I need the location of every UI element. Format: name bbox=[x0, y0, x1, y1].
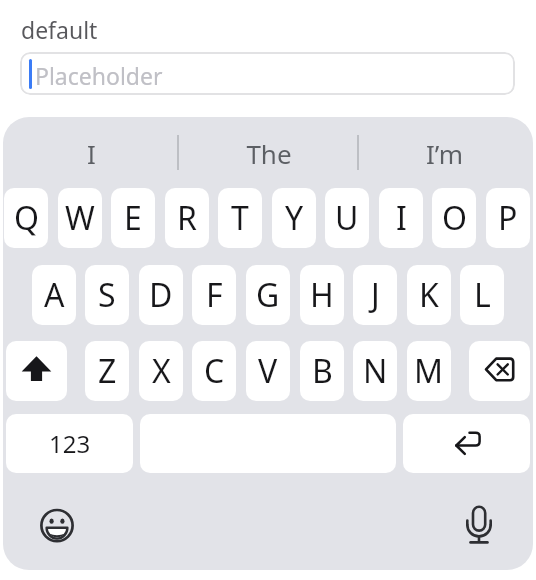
button[interactable] bbox=[457, 503, 502, 548]
staticText: I bbox=[396, 196, 407, 240]
button[interactable]: Y bbox=[272, 188, 316, 248]
staticText: U bbox=[335, 196, 359, 240]
staticText: Y bbox=[285, 196, 304, 240]
button[interactable]: E bbox=[111, 188, 155, 248]
staticText: I bbox=[87, 136, 96, 171]
staticText: H bbox=[310, 273, 334, 317]
button[interactable]: B bbox=[300, 341, 344, 401]
staticText: W bbox=[65, 196, 95, 240]
staticText: D bbox=[149, 273, 173, 317]
button[interactable]: Q bbox=[4, 188, 48, 248]
staticText: A bbox=[44, 273, 65, 317]
button[interactable]: F bbox=[192, 265, 236, 325]
button[interactable] bbox=[35, 503, 80, 548]
staticText: L bbox=[474, 273, 491, 317]
button[interactable]: C bbox=[192, 341, 236, 401]
staticText: S bbox=[98, 273, 116, 317]
staticText: I’m bbox=[426, 136, 463, 171]
button[interactable]: A bbox=[32, 265, 76, 325]
button[interactable]: N bbox=[353, 341, 397, 401]
button[interactable]: T bbox=[218, 188, 262, 248]
staticText: Z bbox=[98, 349, 117, 393]
button[interactable]: D bbox=[139, 265, 183, 325]
staticText: M bbox=[414, 349, 444, 393]
staticText: 123 bbox=[49, 427, 91, 460]
button[interactable]: O bbox=[432, 188, 476, 248]
staticText: B bbox=[312, 349, 333, 393]
button[interactable]: H bbox=[300, 265, 344, 325]
button[interactable]: V bbox=[246, 341, 290, 401]
staticText: F bbox=[206, 273, 223, 317]
button[interactable]: R bbox=[165, 188, 209, 248]
button[interactable]: L bbox=[460, 265, 504, 325]
button[interactable] bbox=[6, 341, 67, 401]
button[interactable]: W bbox=[58, 188, 102, 248]
button[interactable]: U bbox=[325, 188, 369, 248]
staticText: E bbox=[124, 196, 142, 240]
button[interactable]: K bbox=[407, 265, 451, 325]
staticText: O bbox=[442, 196, 467, 240]
button[interactable]: Placeholder bbox=[20, 52, 515, 95]
staticText: X bbox=[152, 349, 171, 393]
button[interactable] bbox=[469, 341, 530, 401]
button[interactable]: I bbox=[379, 188, 423, 248]
button[interactable]: The bbox=[180, 120, 357, 186]
staticText: Q bbox=[14, 196, 39, 240]
button[interactable]: I bbox=[3, 120, 180, 186]
staticText: T bbox=[231, 196, 249, 240]
staticText: default bbox=[21, 14, 98, 45]
staticText: K bbox=[419, 273, 439, 317]
button[interactable]: M bbox=[407, 341, 451, 401]
button[interactable]: X bbox=[139, 341, 183, 401]
button[interactable]: 123 bbox=[6, 414, 133, 473]
staticText: Placeholder bbox=[35, 60, 163, 91]
staticText: G bbox=[256, 273, 280, 317]
staticText: J bbox=[371, 273, 380, 317]
button[interactable]: I’m bbox=[356, 120, 533, 186]
staticText: V bbox=[258, 349, 278, 393]
button[interactable]: P bbox=[486, 188, 530, 248]
staticText: The bbox=[246, 136, 292, 171]
staticText: R bbox=[177, 196, 197, 240]
button[interactable]: G bbox=[246, 265, 290, 325]
staticText: N bbox=[363, 349, 388, 393]
button[interactable]: J bbox=[353, 265, 397, 325]
button[interactable] bbox=[403, 414, 530, 473]
staticText: P bbox=[498, 196, 518, 240]
button[interactable]: S bbox=[85, 265, 129, 325]
staticText: C bbox=[204, 349, 225, 393]
button[interactable]: Z bbox=[85, 341, 129, 401]
